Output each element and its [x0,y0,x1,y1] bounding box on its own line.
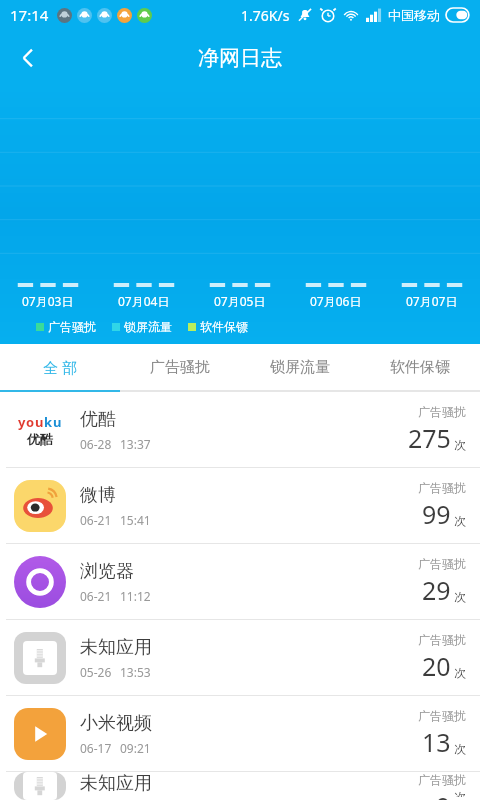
staticText: 锁屏流量 [270,358,330,377]
staticText: 次 [454,437,466,452]
staticText: u [35,413,44,431]
staticText: 锁屏流量 [124,319,172,334]
staticText: 小米视频 [80,712,152,735]
staticText: 07月06日 [310,293,362,309]
staticText: 广告骚扰 [418,556,466,571]
staticText: 优酷 [80,408,116,431]
staticText: o [26,413,35,431]
staticText: 09:21 [120,740,151,756]
staticText: 广告骚扰 [418,632,466,647]
staticText: 1.76K/s [241,6,290,25]
staticText: 全 部 [43,357,77,377]
staticText: 06-17 [80,740,112,756]
staticText: 06-21 [80,512,112,528]
staticText: 13:53 [120,664,151,680]
staticText: 中国移动 [388,7,440,23]
staticText: k [44,413,53,431]
staticText: 软件保镖 [390,358,450,377]
staticText: 07月04日 [118,293,170,309]
staticText: u [53,413,62,431]
staticText: 17:14 [10,5,49,25]
staticText: 06-21 [80,588,112,604]
staticText: 29 [422,573,451,607]
staticText: 07月07日 [406,293,458,309]
button[interactable]: 全 部 [0,344,120,390]
staticText: 广告骚扰 [418,480,466,495]
staticText: 13 [422,725,451,759]
staticText: 次 [454,589,466,604]
staticText: 13:37 [120,436,151,452]
button[interactable]: 锁屏流量 [240,344,360,390]
staticText: 净网日志 [198,45,282,71]
button[interactable]: Back [4,34,52,82]
staticText: 9 [436,789,451,800]
staticText: 05-26 [80,664,112,680]
staticText: 20 [422,649,451,683]
staticText: 广告骚扰 [418,708,466,723]
staticText: 未知应用 [80,772,152,795]
staticText: 广告骚扰 [48,319,96,334]
staticText: 微博 [80,484,116,507]
staticText: 浏览器 [80,560,134,583]
button[interactable]: 未知应用 [0,620,480,695]
staticText: 次 [454,513,466,528]
button[interactable]: 微博 [0,468,480,543]
staticText: 广告骚扰 [418,772,466,787]
button[interactable]: 小米视频 [0,696,480,771]
staticText: 次 [454,789,466,797]
staticText: 软件保镖 [200,319,248,334]
staticText: 次 [454,741,466,756]
button[interactable]: 广告骚扰 [120,344,240,390]
staticText: y [18,413,26,431]
button[interactable]: y [0,392,480,467]
staticText: 广告骚扰 [150,358,210,377]
staticText: 优酷 [27,431,53,447]
staticText: 07月05日 [214,293,266,309]
button[interactable]: 浏览器 [0,544,480,619]
staticText: 07月03日 [22,293,74,309]
staticText: 275 [408,421,451,455]
staticText: 06-28 [80,436,112,452]
staticText: 15:41 [120,512,151,528]
staticText: 广告骚扰 [418,404,466,419]
button[interactable]: 未知应用 [0,772,480,800]
staticText: 99 [422,497,451,531]
button[interactable]: 软件保镖 [360,344,480,390]
staticText: 11:12 [120,588,151,604]
staticText: 次 [454,665,466,680]
staticText: 未知应用 [80,636,152,659]
